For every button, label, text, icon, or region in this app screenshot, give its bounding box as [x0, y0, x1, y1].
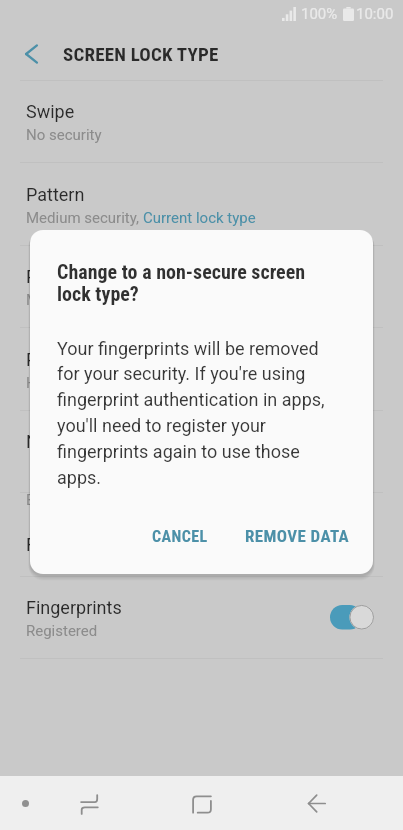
staticText: 10:00 — [356, 5, 394, 23]
staticText: Registered — [26, 622, 98, 640]
button[interactable]: REMOVE DATA — [236, 517, 358, 555]
staticText: Medium security, — [26, 209, 143, 227]
button[interactable]: Navigate up — [13, 36, 49, 72]
button[interactable]: CANCEL — [138, 517, 222, 555]
staticText: High security — [26, 374, 114, 392]
staticText: CANCEL — [152, 527, 208, 546]
button[interactable]: Password — [0, 328, 403, 411]
staticText: Biometrics — [26, 491, 98, 509]
button[interactable]: Back — [293, 783, 341, 824]
button[interactable]: PIN — [0, 245, 403, 328]
staticText: 100% — [301, 5, 338, 23]
button[interactable]: Fingerprints — [0, 576, 403, 659]
staticText: Change to a non-secure screen lock type? — [57, 260, 319, 306]
staticText: No security — [26, 126, 102, 144]
button[interactable]: Face — [0, 513, 403, 576]
staticText: SCREEN LOCK TYPE — [63, 43, 219, 65]
button[interactable]: Home — [178, 784, 226, 825]
button[interactable]: Recent apps — [66, 784, 114, 825]
staticText: None — [26, 431, 69, 452]
button[interactable]: Swipe — [0, 80, 403, 163]
staticText: Face — [26, 534, 65, 555]
staticText: Swipe — [26, 101, 75, 122]
staticText: Your fingerprints will be removed for yo… — [57, 338, 332, 489]
staticText: Fingerprints — [26, 597, 122, 618]
staticText: PIN — [26, 266, 56, 287]
staticText: Current lock type — [143, 209, 256, 227]
button[interactable]: None — [0, 410, 403, 493]
staticText: REMOVE DATA — [245, 526, 350, 546]
staticText: Pattern — [26, 184, 85, 205]
button[interactable]: Pattern — [0, 163, 403, 246]
staticText: Password — [26, 349, 106, 370]
staticText: Medium security — [26, 291, 137, 309]
